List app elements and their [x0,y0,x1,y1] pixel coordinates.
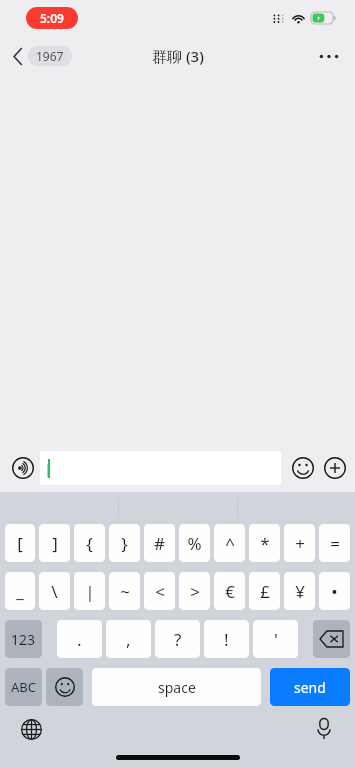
button[interactable]: More options [311,38,347,74]
button[interactable]: ] [39,524,70,562]
staticText: [ [17,532,23,555]
button[interactable]: [ [5,524,35,562]
staticText: ! [224,628,229,651]
staticText: > [190,580,200,603]
button[interactable]: + [284,524,315,562]
staticText: % [187,532,202,555]
button[interactable]: _ [5,572,35,610]
button[interactable]: % [179,524,210,562]
button[interactable]: space [92,668,261,706]
button[interactable]: send [270,668,350,706]
staticText: ^ [225,532,235,555]
button[interactable]: ABC [5,668,42,706]
button[interactable]: > [179,572,210,610]
button[interactable]: Backspace [313,620,350,658]
staticText: € [225,580,235,603]
staticText: = [330,532,340,555]
button[interactable]: ' [253,620,298,658]
button[interactable]: [ [40,451,281,485]
staticText: 群聊 (3) [152,46,204,66]
staticText: ¥ [295,580,305,603]
button[interactable]: | [74,572,105,610]
button[interactable]: ^ [214,524,245,562]
staticText: } [121,532,128,555]
staticText: ~ [120,580,130,603]
staticText: 5:09 [40,10,64,26]
staticText: 1967 [36,48,64,64]
button[interactable]: ! [204,620,249,658]
button[interactable]: ¥ [284,572,315,610]
staticText: ? [174,628,182,651]
button[interactable]: , [106,620,151,658]
staticText: £ [260,580,270,603]
button[interactable]: Emoji [287,452,319,484]
button[interactable]: € [214,572,245,610]
button[interactable]: Voice dictation [307,712,341,746]
staticText: * [260,532,270,555]
staticText: [ [46,459,51,478]
button[interactable]: Change keyboard language [14,712,48,746]
button[interactable]: < [144,572,175,610]
staticText: , [126,628,131,651]
button[interactable]: 1967 [10,42,75,70]
button[interactable]: Emoji keyboard [46,668,83,706]
staticText: ABC [11,678,36,696]
button[interactable]: ? [155,620,200,658]
staticText: # [154,532,165,555]
button[interactable]: 123 [5,620,42,658]
button[interactable]: £ [249,572,280,610]
button[interactable]: { [74,524,105,562]
staticText: 123 [11,630,36,649]
staticText: \ [51,580,58,603]
button[interactable]: . [57,620,102,658]
staticText: | [85,580,95,603]
staticText: _ [16,580,24,603]
staticText: space [158,678,196,697]
staticText: ] [52,532,58,555]
staticText: ' [274,628,278,651]
button[interactable]: } [109,524,140,562]
button[interactable]: \ [39,572,70,610]
staticText: < [155,580,165,603]
staticText: { [86,532,93,555]
button[interactable]: ~ [109,572,140,610]
staticText: + [295,532,305,555]
button[interactable]: • [319,572,350,610]
button[interactable]: = [319,524,350,562]
button[interactable]: Add attachment [319,452,351,484]
button[interactable]: # [144,524,175,562]
staticText: . [77,628,82,651]
staticText: • [331,580,338,603]
button[interactable]: * [249,524,280,562]
button[interactable]: Voice input [6,451,40,485]
staticText: send [294,678,326,697]
